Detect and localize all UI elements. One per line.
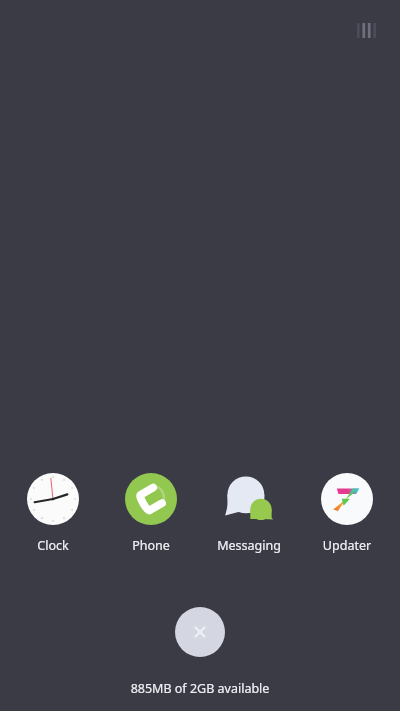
button[interactable]: Phone [106,473,196,554]
staticText: 885MB of 2GB available [0,680,400,697]
staticText: Updater [302,537,392,554]
button[interactable]: Recent apps [357,23,376,38]
button[interactable]: Updater [302,473,392,554]
button[interactable]: Close all apps [175,607,225,657]
button[interactable]: Clock [8,473,98,554]
button[interactable]: Messaging [204,473,294,554]
staticText: Clock [8,537,98,554]
staticText: Messaging [204,537,294,554]
staticText: Phone [106,537,196,554]
